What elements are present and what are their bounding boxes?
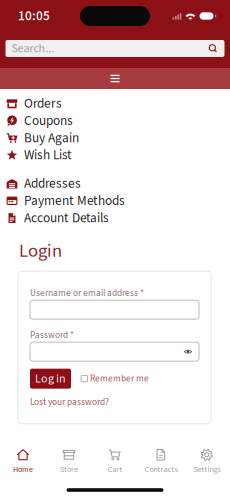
button[interactable]: Orders [0, 95, 230, 112]
staticText: Settings [193, 464, 220, 475]
button[interactable]: Search... [5, 40, 224, 57]
staticText: Payment Methods [24, 191, 125, 210]
button[interactable]: Coupons [0, 112, 230, 129]
staticText: Username or email address * [30, 286, 144, 300]
button[interactable]: Payment Methods [0, 192, 230, 209]
staticText: Orders [24, 94, 62, 113]
staticText: Cart [107, 464, 122, 475]
staticText: Buy Again [24, 128, 79, 147]
button[interactable]: Cart [92, 446, 138, 478]
button[interactable]: Log in [30, 369, 71, 389]
button[interactable]: Contracts [138, 446, 184, 478]
staticText: 10:05 [18, 6, 50, 25]
button[interactable]: Settings [184, 446, 230, 478]
button[interactable]: Remember me [81, 369, 149, 389]
button[interactable]: Menu [0, 68, 230, 89]
staticText: Search... [11, 40, 54, 57]
button[interactable]: Home [0, 446, 46, 478]
staticText: Home [13, 464, 33, 475]
staticText: Password * [30, 328, 74, 342]
staticText: Coupons [24, 111, 73, 130]
staticText: Store [60, 464, 78, 475]
button[interactable]: Buy Again [0, 129, 230, 147]
staticText: Lost your password? [30, 395, 109, 409]
button[interactable]: Addresses [0, 175, 230, 192]
staticText: Account Details [24, 208, 109, 227]
staticText: Login [19, 238, 62, 264]
button[interactable]: Lost your password? [30, 398, 109, 407]
staticText: Wish List [24, 146, 72, 165]
staticText: Log in [35, 370, 66, 387]
staticText: Contracts [144, 464, 177, 475]
staticText: Addresses [24, 174, 81, 193]
button[interactable]: Store [46, 446, 92, 478]
staticText: Remember me [90, 372, 149, 385]
button[interactable]: Wish List [0, 147, 230, 164]
button[interactable]: Account Details [0, 209, 230, 227]
